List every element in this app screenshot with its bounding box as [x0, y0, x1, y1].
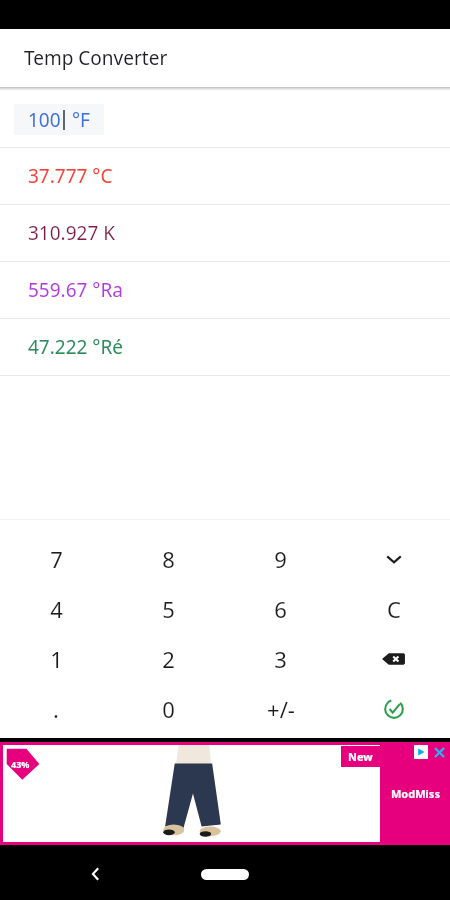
button[interactable]: 6 [224, 584, 337, 634]
staticText: 0 [162, 694, 175, 724]
button[interactable]: 1 [0, 634, 112, 684]
button[interactable]: 100 [0, 104, 450, 135]
staticText: 9 [274, 544, 287, 574]
staticText: 6 [274, 594, 287, 624]
staticText: New [348, 749, 373, 764]
button[interactable]: 43% [0, 742, 450, 845]
button[interactable]: 8 [112, 534, 224, 584]
button[interactable]: 4 [0, 584, 112, 634]
staticText: 7 [50, 544, 63, 574]
button[interactable]: 9 [224, 534, 337, 584]
button[interactable]: . [0, 684, 112, 734]
button[interactable]: Back [78, 856, 114, 892]
staticText: 47.222 °Ré [28, 334, 124, 360]
button[interactable]: 47.222 °Ré [0, 319, 450, 375]
button[interactable]: C [337, 584, 450, 634]
button[interactable]: +/- [224, 684, 337, 734]
staticText: Temp Converter [24, 45, 168, 71]
button[interactable]: 37.777 °C [0, 148, 450, 204]
staticText: °F [67, 107, 90, 133]
staticText: 2 [162, 644, 175, 674]
button[interactable]: Home [193, 861, 257, 888]
button[interactable]: 0 [112, 684, 224, 734]
staticText: 4 [50, 594, 63, 624]
staticText: C [387, 594, 401, 624]
button[interactable]: 5 [112, 584, 224, 634]
staticText: ModMiss [391, 786, 440, 801]
button[interactable]: Backspace [337, 634, 450, 684]
other: Close ad [433, 746, 446, 759]
button[interactable]: 3 [224, 634, 337, 684]
staticText: 43% [11, 758, 30, 770]
button[interactable]: 7 [0, 534, 112, 584]
button[interactable]: 310.927 K [0, 205, 450, 261]
staticText: 8 [162, 544, 175, 574]
staticText: +/- [267, 694, 295, 724]
other: Ad choices [414, 745, 428, 759]
button[interactable]: 2 [112, 634, 224, 684]
button[interactable]: 559.67 °Ra [0, 262, 450, 318]
staticText: 5 [162, 594, 175, 624]
staticText: 559.67 °Ra [28, 277, 123, 303]
button[interactable]: Done [337, 684, 450, 734]
staticText: 37.777 °C [28, 163, 113, 189]
staticText: 3 [274, 644, 287, 674]
staticText: . [53, 694, 59, 724]
staticText: 100 [28, 107, 61, 133]
button[interactable]: Hide keypad [337, 534, 450, 584]
staticText: 1 [50, 644, 63, 674]
staticText: 310.927 K [28, 220, 116, 246]
